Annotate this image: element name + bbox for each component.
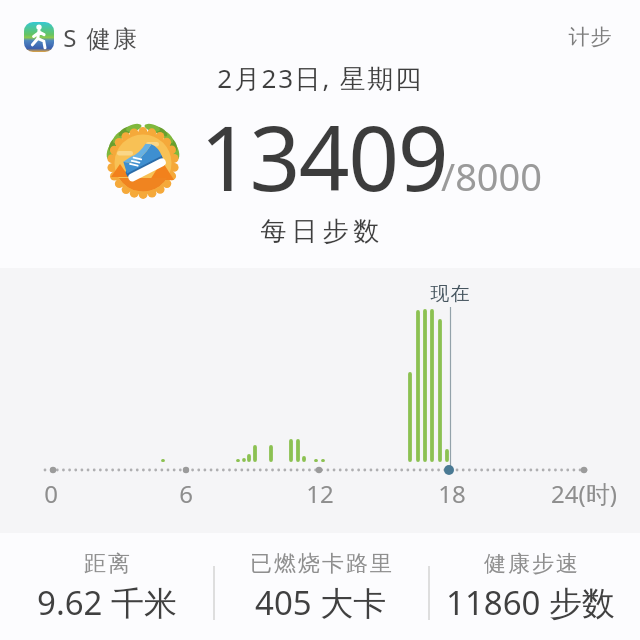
staticText: 18 — [438, 477, 466, 510]
button[interactable]: 计步 — [560, 20, 620, 54]
button[interactable]: 距离 — [0, 540, 214, 635]
staticText: 9.62 千米 — [37, 580, 178, 625]
staticText: 每日步数 — [258, 215, 382, 248]
staticText: 6 — [179, 477, 193, 510]
staticText: S 健康 — [63, 21, 139, 54]
staticText: 11860 步数 — [446, 580, 615, 625]
staticText: 405 大卡 — [255, 580, 387, 625]
staticText: 12 — [306, 477, 334, 510]
staticText: 2月23日, 星期四 — [217, 60, 423, 96]
button[interactable]: 已燃烧卡路里 — [214, 540, 427, 635]
staticText: 现在 — [430, 282, 470, 306]
button[interactable]: 健康步速 — [424, 540, 637, 635]
staticText: 健康步速 — [483, 550, 579, 578]
button[interactable] — [24, 22, 54, 52]
staticText: 已燃烧卡路里 — [249, 550, 393, 578]
staticText: 13409 — [200, 96, 448, 217]
staticText: /8000 — [441, 150, 543, 202]
staticText: 距离 — [83, 550, 131, 578]
staticText: 24(时) — [551, 477, 617, 510]
staticText: 计步 — [568, 24, 612, 50]
staticText: 0 — [44, 477, 58, 510]
